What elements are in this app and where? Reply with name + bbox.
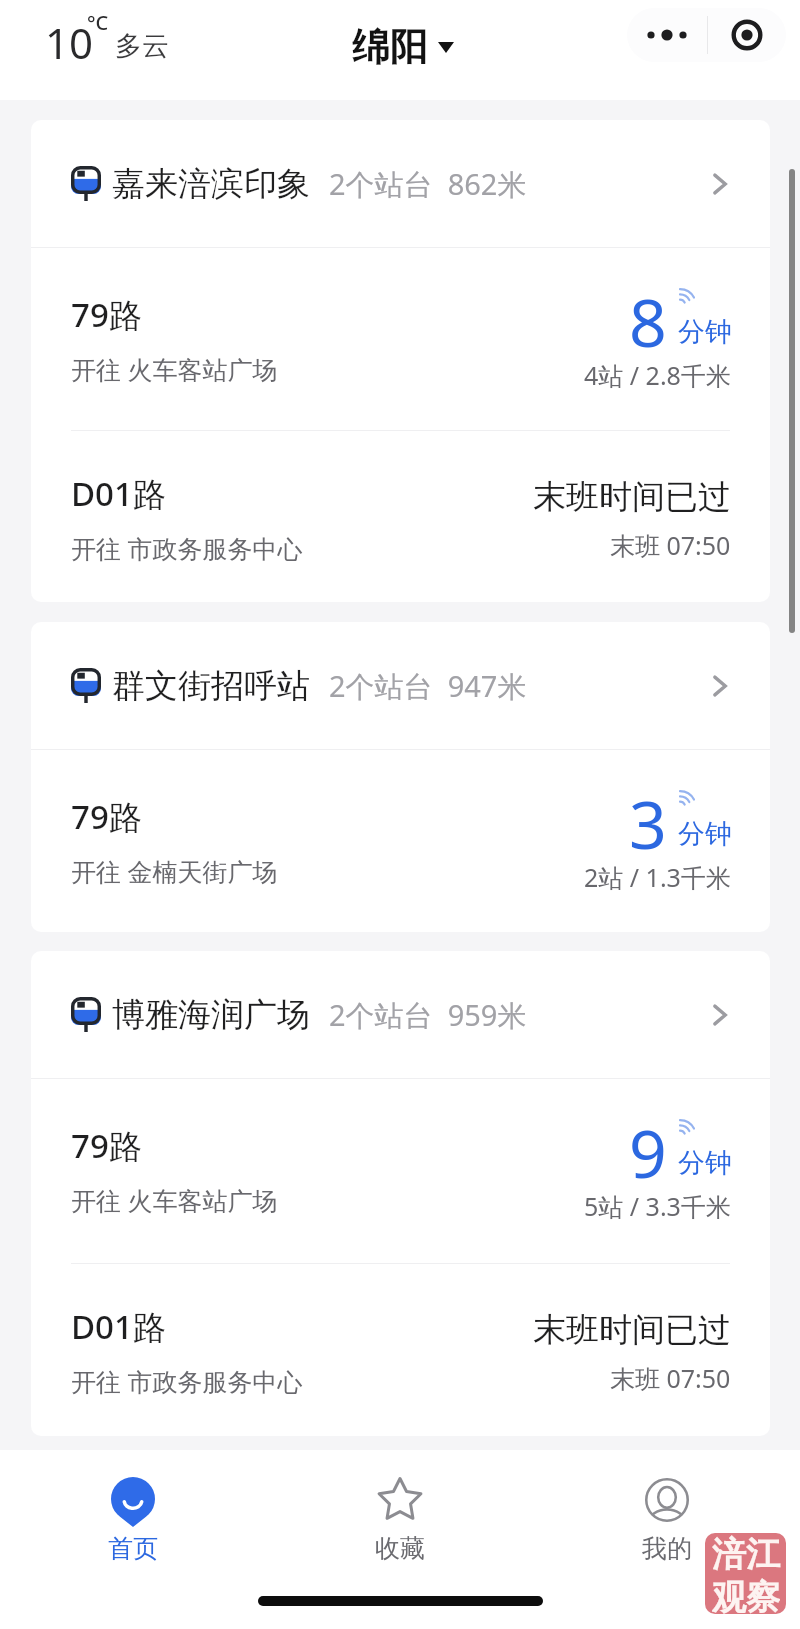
button[interactable]: D01路	[31, 431, 770, 602]
staticText: 开往 市政务服务中心	[71, 1364, 303, 1398]
staticText: 2个站台 862米	[329, 164, 527, 204]
staticText: 开往 火车客站广场	[71, 1183, 278, 1217]
staticText: 5站 / 3.3千米	[584, 1189, 731, 1223]
staticText: 绵阳	[352, 23, 428, 71]
staticText: 9	[629, 1107, 667, 1197]
staticText: 开往 金楠天街广场	[71, 854, 278, 888]
staticText: 博雅海润广场	[112, 994, 310, 1036]
button[interactable]: 绵阳	[352, 23, 454, 71]
staticText: 79路	[71, 794, 142, 839]
staticText: 我的	[642, 1533, 692, 1564]
button[interactable]: 79路	[31, 248, 770, 430]
staticText: 2站 / 1.3千米	[584, 860, 731, 894]
staticText: 收藏	[375, 1533, 425, 1564]
staticText: D01路	[71, 471, 166, 516]
button[interactable]: 我的	[533, 1477, 800, 1564]
staticText: 涪江	[712, 1533, 780, 1576]
button[interactable]: 79路	[31, 750, 770, 932]
staticText: 首页	[108, 1533, 158, 1564]
button[interactable]: 79路	[31, 1079, 770, 1263]
staticText: 分钟	[678, 1146, 732, 1180]
staticText: 4站 / 2.8千米	[584, 358, 731, 392]
staticText: 末班时间已过	[533, 1309, 731, 1351]
button[interactable]: 首页	[0, 1477, 266, 1564]
button[interactable]: 群文街招呼站	[31, 622, 770, 749]
button[interactable]: Close mini program	[708, 8, 786, 62]
staticText: 末班时间已过	[533, 476, 731, 518]
staticText: 3	[629, 778, 667, 868]
staticText: °C	[87, 9, 109, 36]
staticText: 群文街招呼站	[112, 665, 310, 707]
staticText: D01路	[71, 1304, 166, 1349]
staticText: 嘉来涪滨印象	[112, 163, 310, 205]
button[interactable]: 嘉来涪滨印象	[31, 120, 770, 247]
staticText: 2个站台 959米	[329, 995, 527, 1035]
staticText: 分钟	[678, 817, 732, 851]
staticText: 开往 火车客站广场	[71, 352, 278, 386]
staticText: 观察	[712, 1576, 780, 1614]
staticText: 10	[45, 14, 94, 71]
staticText: 79路	[71, 1123, 142, 1168]
button[interactable]: More options	[627, 8, 707, 62]
staticText: 多云	[115, 29, 169, 63]
button[interactable]: D01路	[31, 1264, 770, 1436]
staticText: 2个站台 947米	[329, 666, 527, 706]
staticText: 末班 07:50	[610, 528, 731, 562]
staticText: 8	[629, 276, 667, 366]
staticText: 末班 07:50	[610, 1361, 731, 1395]
staticText: 分钟	[678, 315, 732, 349]
staticText: 79路	[71, 292, 142, 337]
staticText: 开往 市政务服务中心	[71, 531, 303, 565]
button[interactable]: 博雅海润广场	[31, 951, 770, 1078]
button[interactable]: 收藏	[266, 1477, 533, 1564]
